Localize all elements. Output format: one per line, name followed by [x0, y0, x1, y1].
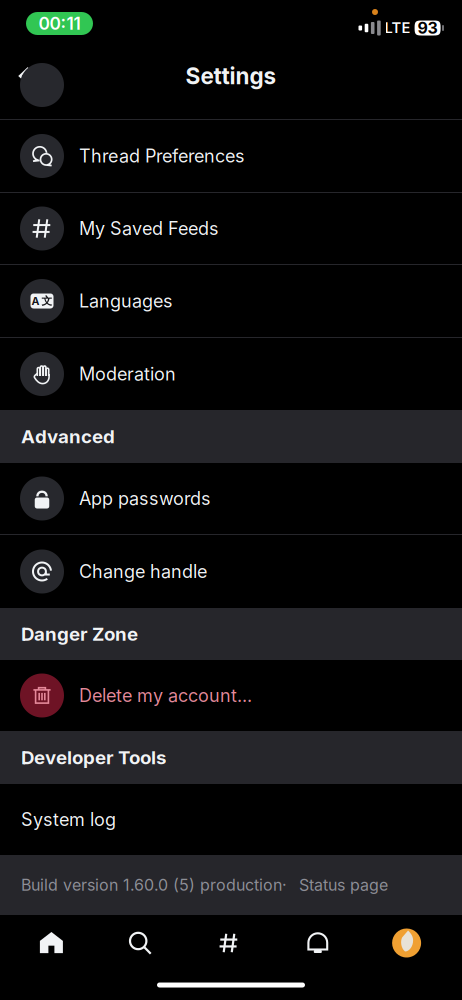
staticText: Danger Zone: [21, 623, 138, 645]
button[interactable]: Change handle: [0, 535, 462, 608]
button[interactable]: Home: [7, 916, 96, 970]
button[interactable]: Feeds: [185, 916, 273, 970]
button[interactable]: My Saved Feeds: [0, 193, 462, 264]
staticText: App passwords: [79, 488, 211, 509]
staticText: Status page: [299, 875, 388, 895]
button[interactable]: Search: [96, 916, 185, 970]
staticText: LTE: [385, 19, 411, 37]
button[interactable]: Status page: [287, 875, 388, 895]
button[interactable]: System log: [0, 784, 462, 855]
staticText: 00:11: [38, 13, 80, 34]
staticText: 文: [41, 294, 52, 308]
button[interactable]: A: [0, 265, 462, 337]
staticText: System log: [21, 809, 116, 830]
staticText: Build version 1.60.0 (5) production·: [21, 875, 287, 895]
button[interactable]: Moderation: [0, 338, 462, 410]
staticText: Delete my account...: [79, 685, 252, 706]
button[interactable]: Thread Preferences: [0, 120, 462, 192]
staticText: Moderation: [79, 363, 176, 385]
staticText: Advanced: [21, 425, 115, 448]
staticText: Languages: [79, 290, 173, 312]
staticText: Change handle: [79, 561, 207, 582]
staticText: Thread Preferences: [79, 145, 245, 167]
button[interactable]: Notifications: [273, 916, 362, 970]
button[interactable]: Delete my account...: [0, 660, 462, 731]
staticText: 93: [418, 18, 438, 38]
staticText: My Saved Feeds: [79, 218, 219, 239]
staticText: Developer Tools: [21, 746, 166, 769]
staticText: Settings: [185, 62, 276, 90]
button[interactable]: App passwords: [0, 463, 462, 534]
button[interactable]: Back: [2, 54, 46, 98]
staticText: A: [31, 294, 39, 307]
button[interactable]: Profile: [362, 916, 451, 970]
